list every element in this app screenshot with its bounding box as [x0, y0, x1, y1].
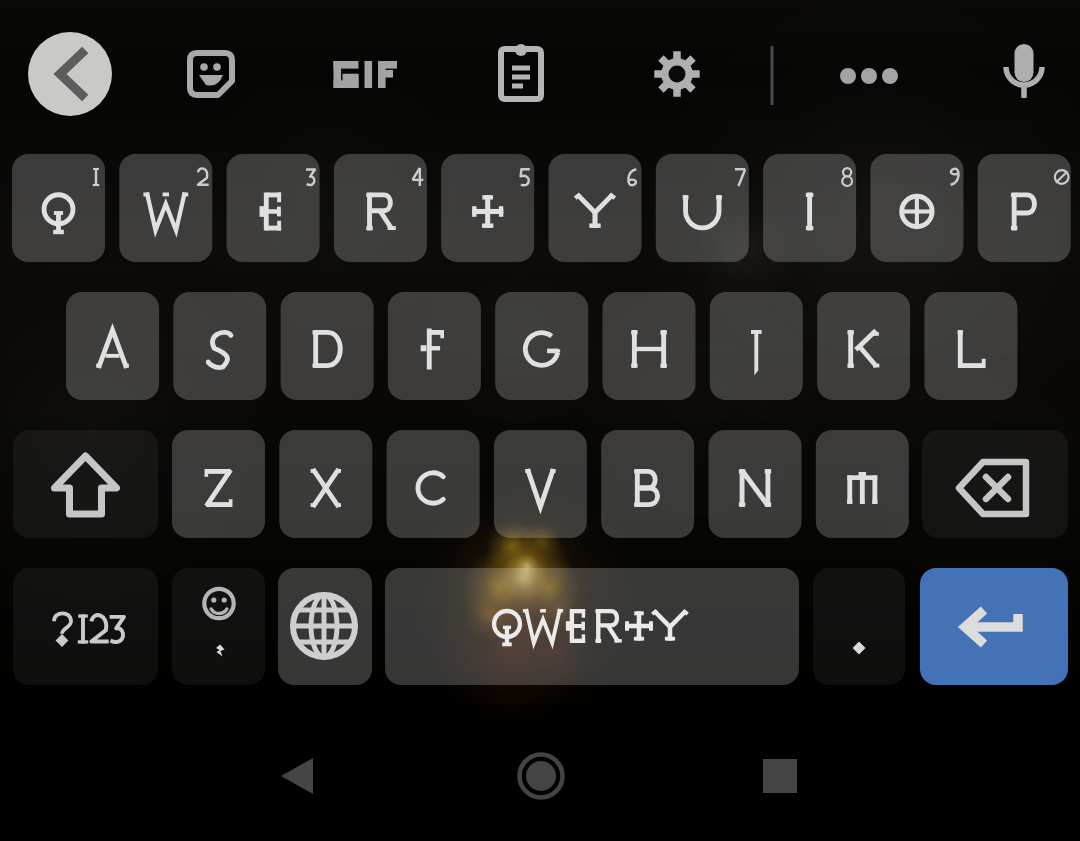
button[interactable]: Emoji: [172, 568, 265, 685]
button[interactable]: Home: [505, 740, 577, 812]
button[interactable]: Stickers: [175, 38, 247, 110]
button[interactable]: Shift: [13, 430, 158, 538]
button[interactable]: [281, 292, 374, 400]
button[interactable]: [710, 292, 803, 400]
button[interactable]: [978, 154, 1071, 262]
button[interactable]: [119, 154, 212, 262]
button[interactable]: [549, 154, 642, 262]
button[interactable]: Clipboard: [485, 38, 557, 110]
button[interactable]: [66, 292, 159, 400]
button[interactable]: Space: [385, 568, 799, 685]
button[interactable]: [870, 154, 963, 262]
button[interactable]: [494, 430, 587, 538]
button[interactable]: [388, 292, 481, 400]
button[interactable]: [441, 154, 534, 262]
button[interactable]: Settings: [641, 38, 713, 110]
button[interactable]: Enter: [920, 568, 1068, 685]
button[interactable]: Back: [260, 740, 340, 812]
button[interactable]: Back: [28, 32, 112, 116]
button[interactable]: [173, 292, 266, 400]
button[interactable]: [763, 154, 856, 262]
button[interactable]: Voice input: [988, 38, 1060, 110]
button[interactable]: [817, 292, 910, 400]
button[interactable]: [601, 430, 694, 538]
button[interactable]: Symbols: [13, 568, 158, 685]
button[interactable]: [709, 430, 802, 538]
button[interactable]: [387, 430, 480, 538]
button[interactable]: [334, 154, 427, 262]
button[interactable]: [279, 430, 372, 538]
button[interactable]: More options: [833, 38, 905, 110]
button[interactable]: Period: [813, 568, 905, 685]
button[interactable]: [816, 430, 909, 538]
button[interactable]: Backspace: [922, 430, 1068, 538]
button[interactable]: [924, 292, 1017, 400]
button[interactable]: [495, 292, 588, 400]
button[interactable]: [656, 154, 749, 262]
button[interactable]: GIF: [328, 38, 400, 110]
button[interactable]: Recents: [745, 740, 817, 812]
button[interactable]: [12, 154, 105, 262]
button[interactable]: [227, 154, 320, 262]
button[interactable]: Change language: [278, 568, 372, 685]
button[interactable]: [603, 292, 696, 400]
button[interactable]: [172, 430, 265, 538]
